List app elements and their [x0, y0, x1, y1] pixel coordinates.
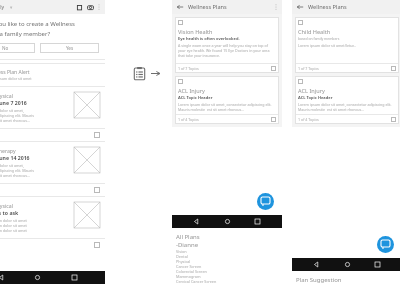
- button[interactable]: ACL Injury: [175, 76, 279, 124]
- staticText: Eye health is often overlooked.: [178, 36, 240, 41]
- staticText: 1. Lorem ipsum dolor sit amet: [0, 218, 27, 223]
- staticText: Dental: [176, 254, 188, 259]
- button[interactable]: Bookmark: [271, 66, 276, 71]
- button[interactable]: Wellness Plan Alert: [0, 64, 105, 86]
- staticText: Child Health: [298, 28, 331, 36]
- staticText: Tuesday June 14 2016: [0, 154, 30, 161]
- staticText: 2. Lorem ipsum dolor sit amet: [0, 223, 27, 228]
- staticText: Wellness Plans: [308, 3, 347, 11]
- staticText: All Plans: [176, 233, 200, 241]
- staticText: Physical: [176, 259, 191, 264]
- button[interactable]: Back: [191, 216, 202, 227]
- staticText: Wellness Plan Alert: [0, 69, 30, 76]
- button[interactable]: No: [0, 43, 35, 53]
- staticText: Mauris molestie, est sit amet rhoncus...: [298, 107, 365, 111]
- button[interactable]: Recents: [372, 259, 383, 270]
- staticText: Annual Physical: [0, 92, 14, 99]
- button[interactable]: ACL Injury: [295, 76, 399, 124]
- staticText: 1 of 7 Topics: [298, 66, 319, 71]
- staticText: 1 of 7 Topics: [178, 66, 199, 71]
- button[interactable]: Recents: [252, 216, 263, 227]
- button[interactable]: Chat: [257, 193, 274, 210]
- staticText: Lorem ipsum dolor sit amet,: [0, 108, 24, 113]
- button[interactable]: Action: [94, 187, 100, 193]
- staticText: Colorectal Screen: [176, 269, 207, 274]
- staticText: molestie, est sit amet rhoncus...: [0, 173, 30, 178]
- staticText: Plan Suggestion: [296, 276, 342, 284]
- button[interactable]: Child Health: [295, 17, 399, 73]
- button[interactable]: Back: [0, 272, 7, 283]
- button[interactable]: Bookmark: [271, 117, 276, 122]
- staticText: Annual Physical: [0, 202, 14, 209]
- staticText: Questions to ask: [0, 209, 19, 216]
- staticText: 1 of 4 Topics: [298, 117, 319, 122]
- staticText: Vision: [176, 249, 187, 254]
- button[interactable]: Home: [32, 272, 43, 283]
- staticText: ACL Injury: [298, 87, 325, 95]
- staticText: -Dianne: [176, 241, 199, 249]
- button[interactable]: Home: [342, 259, 353, 270]
- button[interactable]: Camera: [87, 4, 94, 11]
- button[interactable]: Back: [176, 3, 184, 11]
- button[interactable]: Back: [311, 259, 322, 270]
- button[interactable]: Action: [94, 132, 100, 138]
- staticText: Cervical Cancer Screen: [176, 279, 217, 284]
- button[interactable]: More options: [274, 3, 278, 11]
- staticText: plan for a family member?: [0, 30, 51, 38]
- staticText: Lorem ipsum dolor sit amet/letur...: [298, 43, 357, 48]
- staticText: Lorem ipsum dolor sit amet, consectetur …: [178, 102, 272, 107]
- button[interactable]: Chat: [377, 236, 394, 253]
- staticText: Yes: [66, 45, 74, 51]
- staticText: No: [2, 45, 9, 51]
- staticText: Wellness Plans: [188, 3, 227, 11]
- staticText: Lorem ipsum dolor sit amet: [0, 76, 32, 81]
- staticText: molestie, est sit amet rhoncus...: [0, 118, 30, 123]
- staticText: ACL Topic Header: [298, 95, 333, 100]
- button[interactable]: More options: [97, 3, 101, 11]
- button[interactable]: Physical Therapy: [0, 142, 105, 196]
- button[interactable]: Annual Physical: [0, 87, 105, 141]
- other: Wellness plan: [133, 67, 146, 80]
- staticText: ACL Injury: [178, 87, 205, 95]
- staticText: your eye health. We found 15 Eye Doctors…: [178, 48, 270, 53]
- button[interactable]: Back: [296, 3, 304, 11]
- staticText: Smith Family: [0, 4, 5, 11]
- button[interactable]: Vision Health: [175, 17, 279, 73]
- staticText: Cancer Screen: [176, 264, 202, 269]
- staticText: that take your insurance.: [178, 53, 221, 58]
- button[interactable]: Home: [222, 216, 233, 227]
- staticText: based on family members: [298, 36, 340, 41]
- button[interactable]: Bookmark: [391, 66, 396, 71]
- staticText: 1 of 4 Topics: [178, 117, 199, 122]
- staticText: consectetur adipiscing elit. Mauris: [0, 168, 35, 173]
- button[interactable]: Yes: [40, 43, 99, 53]
- staticText: Lorem ipsum dolor sit amet, consectetur …: [298, 102, 392, 107]
- button[interactable]: Recents: [69, 272, 80, 283]
- staticText: Tuesday June 7 2016: [0, 99, 27, 106]
- button[interactable]: Action: [94, 242, 100, 248]
- staticText: Mammogram: [176, 274, 201, 279]
- staticText: Physical Therapy: [0, 147, 16, 154]
- staticText: 3. Lorem ipsum dolor sit amet: [0, 228, 27, 233]
- button[interactable]: Delete: [76, 4, 83, 11]
- staticText: Lorem ipsum dolor sit amet,: [0, 163, 24, 168]
- staticText: ▾: [10, 5, 13, 10]
- staticText: ACL Topic Header: [178, 95, 213, 100]
- button[interactable]: Bookmark: [391, 117, 396, 122]
- staticText: Would you like to create a Wellness: [0, 20, 75, 28]
- staticText: consectetur adipiscing elit. Mauris: [0, 113, 35, 118]
- staticText: Mauris molestie, est sit amet rhoncus...: [178, 107, 245, 111]
- button[interactable]: Annual Physical: [0, 197, 105, 251]
- staticText: Vision Health: [178, 28, 213, 36]
- staticText: A single exam once a year will help you …: [178, 43, 268, 48]
